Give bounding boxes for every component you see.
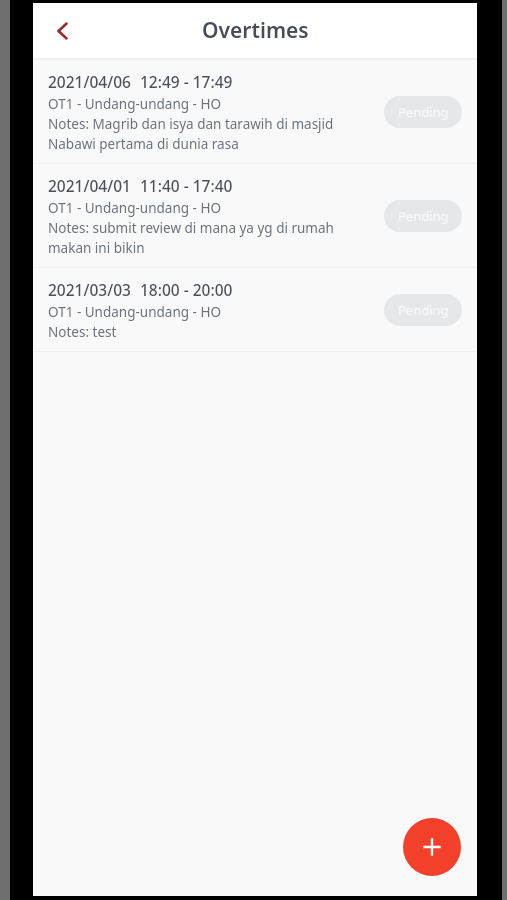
staticText: Overtimes (202, 16, 309, 45)
staticText: Notes: Magrib dan isya dan tarawih di ma… (48, 115, 334, 133)
button[interactable]: Add overtime (403, 818, 461, 876)
staticText: 2021/04/06 (48, 71, 131, 92)
staticText: Pending (398, 301, 449, 319)
staticText: 11:40 - 17:40 (140, 175, 233, 196)
staticText: 18:00 - 20:00 (140, 279, 233, 300)
button[interactable]: Pending (384, 200, 462, 232)
staticText: Nabawi pertama di dunia rasa (48, 135, 239, 153)
button[interactable]: Pending (384, 96, 462, 128)
button[interactable]: Pending (384, 294, 462, 326)
button[interactable]: 2021/04/01 (33, 164, 477, 267)
staticText: 2021/04/01 (48, 175, 131, 196)
staticText: 12:49 - 17:49 (140, 71, 233, 92)
staticText: OT1 - Undang-undang - HO (48, 303, 221, 321)
staticText: Pending (398, 207, 449, 225)
staticText: makan ini bikin (48, 239, 145, 257)
staticText: OT1 - Undang-undang - HO (48, 95, 221, 113)
button[interactable]: 2021/04/06 (33, 60, 477, 163)
staticText: OT1 - Undang-undang - HO (48, 199, 221, 217)
staticText: Pending (398, 103, 449, 121)
staticText: 2021/03/03 (48, 279, 131, 300)
staticText: Notes: submit review di mana ya yg di ru… (48, 219, 334, 237)
button[interactable]: 2021/03/03 (33, 268, 477, 351)
staticText: Notes: test (48, 323, 117, 341)
button[interactable]: Back (41, 9, 85, 53)
